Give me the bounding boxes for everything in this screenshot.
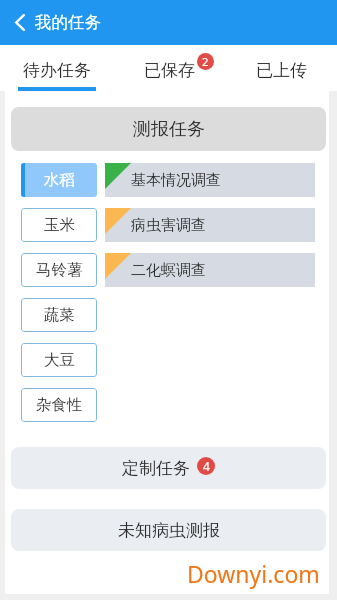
- staticText: 4: [203, 458, 210, 474]
- staticText: 玉米: [44, 215, 75, 235]
- button[interactable]: 蔬菜: [21, 298, 97, 332]
- staticText: 水稻: [44, 170, 75, 190]
- button[interactable]: 基本情况调查: [105, 163, 315, 197]
- button[interactable]: 马铃薯: [21, 253, 97, 287]
- staticText: 二化螟调查: [131, 261, 206, 280]
- button[interactable]: 二化螟调查: [105, 253, 315, 287]
- button[interactable]: 水稻: [21, 163, 97, 197]
- staticText: 杂食性: [36, 395, 83, 415]
- staticText: 我的任务: [35, 12, 101, 33]
- button[interactable]: 病虫害调查: [105, 208, 315, 242]
- button[interactable]: 杂食性: [21, 388, 97, 422]
- button[interactable]: 已保存: [113, 45, 225, 91]
- button[interactable]: 未知病虫测报: [11, 509, 326, 551]
- staticText: 已上传: [256, 60, 307, 81]
- staticText: 测报任务: [133, 118, 205, 141]
- staticText: 大豆: [44, 350, 75, 370]
- staticText: 定制任务: [122, 458, 190, 479]
- staticText: 蔬菜: [44, 305, 75, 325]
- button[interactable]: 定制任务: [11, 447, 326, 489]
- staticText: 待办任务: [23, 60, 91, 81]
- staticText: 2: [202, 54, 209, 69]
- button[interactable]: 玉米: [21, 208, 97, 242]
- staticText: 病虫害调查: [131, 216, 206, 235]
- button[interactable]: 测报任务: [11, 107, 326, 151]
- staticText: 已保存: [144, 60, 195, 81]
- button[interactable]: 已上传: [225, 45, 337, 91]
- staticText: Downyi.com: [187, 558, 320, 589]
- staticText: 未知病虫测报: [118, 520, 220, 541]
- button[interactable]: 待办任务: [0, 45, 113, 91]
- staticText: 马铃薯: [36, 260, 83, 280]
- staticText: 基本情况调查: [131, 171, 221, 190]
- button[interactable]: Back: [0, 0, 40, 45]
- button[interactable]: 大豆: [21, 343, 97, 377]
